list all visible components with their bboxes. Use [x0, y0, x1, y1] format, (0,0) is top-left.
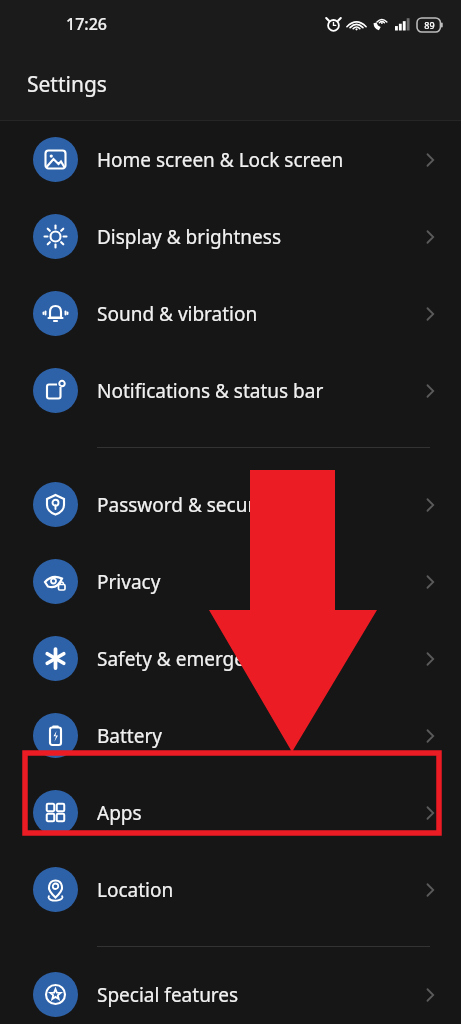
staticText: 17:26: [66, 13, 107, 35]
staticText: Password & security: [97, 492, 421, 518]
staticText: Notifications & status bar: [97, 378, 421, 404]
button[interactable]: Safety & emergency: [0, 620, 461, 697]
staticText: Home screen & Lock screen: [97, 147, 421, 173]
button[interactable]: Home screen & Lock screen: [0, 121, 461, 198]
button[interactable]: Notifications & status bar: [0, 352, 461, 429]
button[interactable]: Privacy: [0, 543, 461, 620]
staticText: 89: [424, 19, 435, 31]
button[interactable]: Apps: [0, 774, 461, 851]
button[interactable]: Location: [0, 851, 461, 928]
staticText: Safety & emergency: [97, 646, 421, 672]
button[interactable]: Battery: [0, 697, 461, 774]
staticText: Display & brightness: [97, 224, 421, 250]
staticText: Settings: [27, 70, 107, 99]
button[interactable]: Password & security: [0, 466, 461, 543]
button[interactable]: Display & brightness: [0, 198, 461, 275]
staticText: Special features: [97, 982, 421, 1008]
button[interactable]: Special features: [0, 965, 461, 1024]
staticText: Location: [97, 877, 421, 903]
staticText: Battery: [97, 723, 421, 749]
staticText: Sound & vibration: [97, 301, 421, 327]
staticText: Privacy: [97, 569, 421, 595]
button[interactable]: Sound & vibration: [0, 275, 461, 352]
staticText: Apps: [97, 800, 421, 826]
